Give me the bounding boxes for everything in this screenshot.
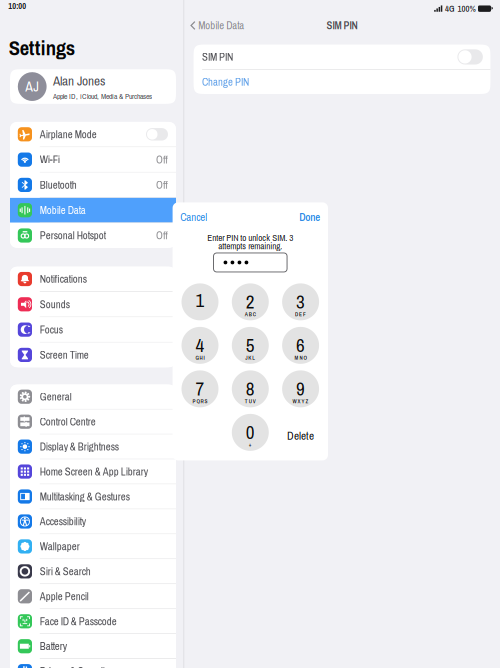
staticText: Accessibility xyxy=(40,514,86,529)
staticText: Settings xyxy=(9,34,75,62)
staticText: AJ xyxy=(25,77,39,96)
button[interactable]: Display & Brightness xyxy=(10,434,176,459)
staticText: Enter PIN to unlock SIM. 3 xyxy=(207,231,293,244)
button[interactable]: Accessibility xyxy=(10,509,176,534)
button[interactable]: Delete xyxy=(282,414,319,451)
staticText: Wallpaper xyxy=(40,539,80,554)
staticText: Screen Time xyxy=(40,348,89,362)
staticText: 0 xyxy=(246,419,255,445)
staticText: Multitasking & Gestures xyxy=(40,489,130,504)
staticText: Privacy & Security xyxy=(40,664,109,668)
staticText: 2 xyxy=(246,289,255,314)
button[interactable]: Face ID & Passcode xyxy=(10,609,176,633)
staticText: Apple ID, iCloud, Media & Purchases xyxy=(53,91,152,101)
button[interactable]: Cancel xyxy=(180,210,207,224)
button[interactable]: 7 xyxy=(181,370,218,407)
button[interactable]: AJ xyxy=(10,69,176,104)
button[interactable]: 6 xyxy=(282,327,319,364)
staticText: Control Centre xyxy=(40,414,96,429)
staticText: Airplane Mode xyxy=(40,127,97,141)
staticText: Battery xyxy=(40,639,67,653)
button[interactable]: Multitasking & Gestures xyxy=(10,484,176,509)
button[interactable]: Bluetooth xyxy=(10,173,176,197)
button[interactable]: Personal Hotspot xyxy=(10,223,176,248)
staticText: General xyxy=(40,389,72,404)
staticText: Off xyxy=(156,178,168,192)
staticText: Alan Jones xyxy=(53,72,105,90)
staticText: 8 xyxy=(246,376,255,401)
staticText: 9 xyxy=(296,376,305,401)
staticText: Mobile Data xyxy=(40,203,86,217)
staticText: 5 xyxy=(246,332,255,358)
staticText: W X Y Z xyxy=(293,398,309,405)
staticText: Home Screen & App Library xyxy=(40,464,148,479)
staticText: 6 xyxy=(296,332,305,358)
button[interactable]: 3 xyxy=(282,283,319,320)
staticText: Focus xyxy=(40,322,63,337)
staticText: 3 xyxy=(296,289,305,314)
button[interactable]: 8 xyxy=(232,370,269,407)
staticText: G H I xyxy=(195,354,204,362)
button[interactable]: Siri & Search xyxy=(10,559,176,584)
staticText: M N O xyxy=(295,354,307,362)
button[interactable]: Battery xyxy=(10,634,176,658)
button[interactable]: Apple Pencil xyxy=(10,584,176,609)
button[interactable]: Airplane Mode xyxy=(10,122,176,147)
staticText: T U V xyxy=(245,398,256,405)
staticText: 1 xyxy=(195,287,204,313)
button[interactable]: 9 xyxy=(282,370,319,407)
button[interactable]: Wi-Fi xyxy=(10,147,176,172)
staticText: Apple Pencil xyxy=(40,589,89,603)
staticText: Off xyxy=(156,152,168,167)
button[interactable]: Notifications xyxy=(10,267,176,291)
button[interactable]: Focus xyxy=(10,317,176,342)
staticText: Face ID & Passcode xyxy=(40,614,117,628)
staticText: Bluetooth xyxy=(40,178,77,192)
staticText: D E F xyxy=(295,311,306,318)
staticText: Sounds xyxy=(40,297,70,311)
button[interactable]: Home Screen & App Library xyxy=(10,459,176,484)
staticText: Delete xyxy=(287,428,314,443)
staticText: 4 xyxy=(195,332,204,358)
staticText: 4G xyxy=(445,3,455,14)
staticText: Cancel xyxy=(180,210,207,224)
staticText: Display & Brightness xyxy=(40,439,119,454)
button[interactable]: Privacy & Security xyxy=(10,659,176,668)
staticText: Off xyxy=(156,228,168,243)
staticText: Mobile Data xyxy=(198,18,244,33)
button[interactable]: Sounds xyxy=(10,292,176,317)
staticText: SIM PIN xyxy=(202,50,233,64)
button[interactable]: Control Centre xyxy=(10,409,176,434)
button[interactable]: SIM PIN xyxy=(457,49,483,64)
staticText: A B C xyxy=(245,311,256,318)
staticText: Notifications xyxy=(40,272,87,286)
staticText: Siri & Search xyxy=(40,564,91,579)
staticText: 10:00 xyxy=(8,0,26,12)
staticText: + xyxy=(249,441,252,449)
button[interactable]: Change PIN xyxy=(194,70,490,94)
staticText: Personal Hotspot xyxy=(40,228,106,243)
button[interactable]: 5 xyxy=(232,327,269,364)
button[interactable]: 4 xyxy=(181,327,218,364)
staticText: Done xyxy=(299,210,320,224)
button[interactable]: Done xyxy=(299,210,320,224)
button[interactable]: General xyxy=(10,385,176,409)
button[interactable]: Mobile Data xyxy=(184,15,244,35)
staticText: Change PIN xyxy=(202,75,249,89)
button[interactable]: Wallpaper xyxy=(10,534,176,559)
staticText: P Q R S xyxy=(192,398,207,405)
staticText: Wi-Fi xyxy=(40,152,60,167)
button[interactable]: 2 xyxy=(232,283,269,320)
staticText: 100% xyxy=(457,3,475,14)
button[interactable]: 1 xyxy=(181,283,218,320)
staticText: J K L xyxy=(245,354,255,362)
staticText: attempts remaining. xyxy=(218,240,282,252)
button[interactable]: Screen Time xyxy=(10,343,176,367)
staticText: 7 xyxy=(195,376,204,401)
button[interactable]: Mobile Data xyxy=(10,198,176,223)
staticText: SIM PIN xyxy=(326,18,357,33)
button[interactable]: 0 xyxy=(232,414,269,451)
